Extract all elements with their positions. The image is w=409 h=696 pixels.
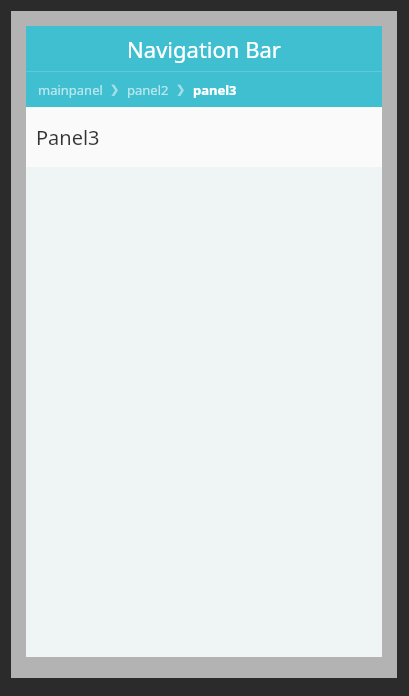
- staticText: panel3: [193, 81, 237, 99]
- staticText: Navigation Bar: [127, 34, 281, 64]
- staticText: Panel3: [36, 124, 100, 151]
- staticText: ❯: [110, 83, 120, 96]
- button[interactable]: Navigation Bar: [26, 26, 382, 71]
- staticText: ❯: [176, 83, 186, 96]
- staticText: panel2: [127, 81, 169, 99]
- button[interactable]: mainpanel: [38, 81, 103, 99]
- button[interactable]: panel2: [127, 81, 169, 99]
- staticText: mainpanel: [38, 81, 103, 99]
- button[interactable]: panel3: [193, 81, 237, 99]
